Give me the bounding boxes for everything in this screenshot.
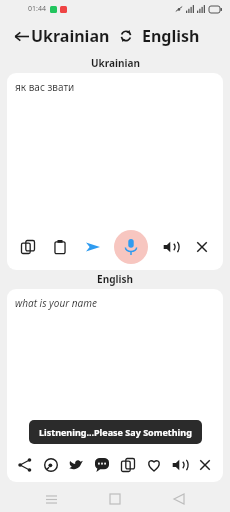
button[interactable]: Listen bbox=[168, 454, 190, 476]
button[interactable]: Translate bbox=[82, 236, 104, 258]
staticText: English bbox=[142, 25, 200, 47]
button[interactable]: Home bbox=[102, 486, 128, 512]
button[interactable]: Copy bbox=[17, 236, 39, 258]
button[interactable]: SMS bbox=[91, 454, 113, 476]
staticText: Listnening...Please Say Something bbox=[39, 426, 192, 438]
button[interactable]: Back bbox=[166, 486, 192, 512]
button[interactable]: Paste bbox=[49, 236, 71, 258]
button[interactable]: English bbox=[142, 25, 200, 47]
button[interactable]: Speak bbox=[114, 230, 148, 264]
button[interactable]: Share bbox=[14, 454, 36, 476]
staticText: Ukrainian bbox=[91, 56, 140, 70]
staticText: what is your name bbox=[15, 296, 97, 310]
button[interactable]: Twitter bbox=[65, 454, 87, 476]
button[interactable]: Copy bbox=[117, 454, 139, 476]
button[interactable]: Close bbox=[194, 454, 216, 476]
button[interactable]: Swap languages bbox=[117, 27, 135, 45]
button[interactable]: Favorite bbox=[143, 454, 165, 476]
button[interactable]: Recents bbox=[38, 486, 64, 512]
staticText: English bbox=[97, 272, 133, 286]
button[interactable]: Listen bbox=[159, 236, 181, 258]
button[interactable]: Clear bbox=[191, 236, 213, 258]
button[interactable]: Back bbox=[8, 23, 34, 49]
button[interactable]: WhatsApp bbox=[40, 454, 62, 476]
button[interactable]: Ukrainian bbox=[31, 25, 110, 47]
staticText: 01:44 bbox=[28, 4, 46, 14]
staticText: як вас звати bbox=[15, 80, 75, 94]
staticText: Ukrainian bbox=[31, 25, 110, 47]
